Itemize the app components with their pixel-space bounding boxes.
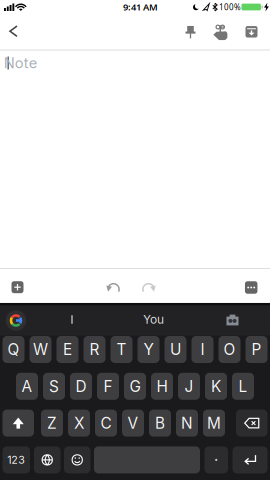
staticText: R <box>89 340 99 359</box>
staticText: 100% <box>219 2 241 12</box>
staticText: You <box>143 312 164 327</box>
button[interactable]: O <box>218 336 240 363</box>
button[interactable]: Google search <box>6 310 26 331</box>
button[interactable]: A <box>16 373 38 400</box>
staticText: D <box>75 377 86 396</box>
button[interactable]: W <box>29 336 51 363</box>
staticText: C <box>100 414 111 432</box>
button[interactable]: Y <box>137 336 159 363</box>
button[interactable]: Add <box>11 281 23 293</box>
staticText: G <box>129 377 140 396</box>
button[interactable]: Delete <box>236 410 267 437</box>
staticText: I <box>200 340 204 359</box>
button[interactable]: G <box>124 373 146 400</box>
button[interactable]: Redo <box>141 281 156 292</box>
staticText: X <box>74 414 84 432</box>
button[interactable]: 123 <box>2 446 30 473</box>
button[interactable]: Back <box>3 25 27 37</box>
button[interactable]: L <box>232 373 254 400</box>
button[interactable]: You <box>118 304 188 334</box>
button[interactable]: N <box>176 410 198 437</box>
button[interactable]: Shift <box>2 410 34 437</box>
button[interactable]: More <box>245 281 257 294</box>
button[interactable]: J <box>178 373 200 400</box>
staticText: Y <box>143 340 153 359</box>
button[interactable]: Undo <box>106 281 121 292</box>
button[interactable]: Emoji <box>64 446 90 473</box>
button[interactable]: R <box>83 336 105 363</box>
button[interactable]: V <box>122 410 144 437</box>
button[interactable]: Z <box>41 410 63 437</box>
button[interactable]: U <box>164 336 186 363</box>
button[interactable]: B <box>149 410 171 437</box>
button[interactable]: Archive <box>245 26 257 38</box>
button[interactable]: T <box>110 336 132 363</box>
button[interactable]: X <box>68 410 90 437</box>
button[interactable]: Space <box>94 446 200 473</box>
staticText: H <box>156 377 167 396</box>
staticText: E <box>63 340 72 359</box>
staticText: B <box>155 414 165 432</box>
staticText: K <box>211 377 221 396</box>
button[interactable]: F <box>97 373 119 400</box>
button[interactable]: I <box>37 304 107 334</box>
button[interactable]: M <box>203 410 225 437</box>
button[interactable]: C <box>95 410 117 437</box>
button[interactable]: Remind me <box>213 25 227 40</box>
staticText: P <box>251 340 261 359</box>
staticText: L <box>238 377 247 396</box>
staticText: M <box>207 414 221 432</box>
staticText: F <box>103 377 112 396</box>
button[interactable]: S <box>43 373 65 400</box>
staticText: A <box>21 377 32 396</box>
button[interactable]: Return <box>232 446 267 473</box>
staticText: Z <box>47 414 57 432</box>
button[interactable]: P <box>245 336 267 363</box>
staticText: 9:41 AM <box>123 1 158 13</box>
button[interactable]: H <box>151 373 173 400</box>
staticText: J <box>184 377 193 396</box>
button[interactable]: E <box>56 336 78 363</box>
staticText: V <box>127 414 138 432</box>
staticText: U <box>170 340 181 359</box>
button[interactable]: Pin <box>185 26 195 38</box>
button[interactable]: D <box>70 373 92 400</box>
button[interactable]: I <box>191 336 213 363</box>
staticText: 123 <box>7 453 25 466</box>
staticText: N <box>181 414 193 432</box>
staticText: S <box>49 377 59 396</box>
button[interactable]: Q <box>2 336 24 363</box>
staticText: T <box>116 340 126 359</box>
staticText: O <box>223 340 235 359</box>
button[interactable]: Period <box>204 446 228 473</box>
staticText: W <box>33 340 48 359</box>
staticText: Q <box>7 340 19 359</box>
button[interactable]: K <box>205 373 227 400</box>
staticText: Note <box>4 54 38 72</box>
button[interactable]: Image search <box>226 315 238 325</box>
button[interactable]: Next keyboard <box>34 446 60 473</box>
